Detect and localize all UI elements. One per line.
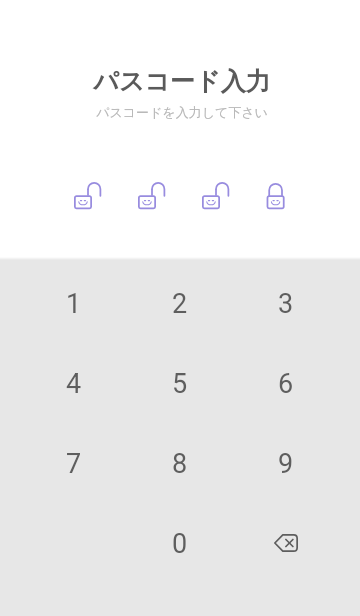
button[interactable]: 3 [233,262,339,342]
staticText: パスコード入力 [93,66,271,97]
button[interactable]: 4 [21,342,127,422]
button[interactable]: 5 [127,342,233,422]
button[interactable]: 0 [127,502,233,582]
staticText: 1 [66,288,82,320]
staticText: 9 [278,448,294,480]
button[interactable]: 6 [233,342,339,422]
other: Passcode digit 2 empty [138,182,166,209]
other: Passcode digit 3 empty [202,182,230,209]
other: Passcode digit 1 empty [74,182,102,209]
staticText: 8 [172,448,188,480]
staticText: 3 [278,288,294,320]
button[interactable]: 8 [127,422,233,502]
staticText: 5 [172,368,188,400]
button[interactable]: 9 [233,422,339,502]
button[interactable]: 2 [127,262,233,342]
staticText: 7 [66,448,82,480]
button[interactable]: 7 [21,422,127,502]
staticText: 2 [172,288,188,320]
button[interactable]: Backspace [233,502,339,582]
staticText: 4 [66,368,82,400]
button[interactable]: 1 [21,262,127,342]
staticText: パスコードを入力して下さい [96,104,268,120]
other: Passcode digit 4 entered [262,182,290,209]
staticText: 6 [278,368,294,400]
staticText: 0 [172,528,188,560]
